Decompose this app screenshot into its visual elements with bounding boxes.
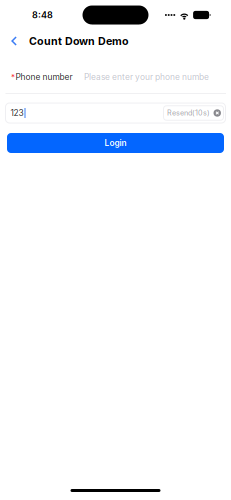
button[interactable]: Login: [7, 133, 224, 153]
staticText: 8:48: [32, 9, 53, 20]
staticText: Resend(10s): [167, 109, 210, 117]
staticText: Phone number: [16, 72, 73, 82]
staticText: Count Down Demo: [29, 34, 129, 47]
staticText: 123: [10, 108, 23, 118]
staticText: *: [11, 72, 15, 82]
staticText: Please enter your phone numbe: [84, 72, 209, 82]
button[interactable]: Clear text: [214, 109, 221, 117]
button[interactable]: Back: [11, 31, 29, 51]
staticText: Login: [104, 138, 126, 148]
